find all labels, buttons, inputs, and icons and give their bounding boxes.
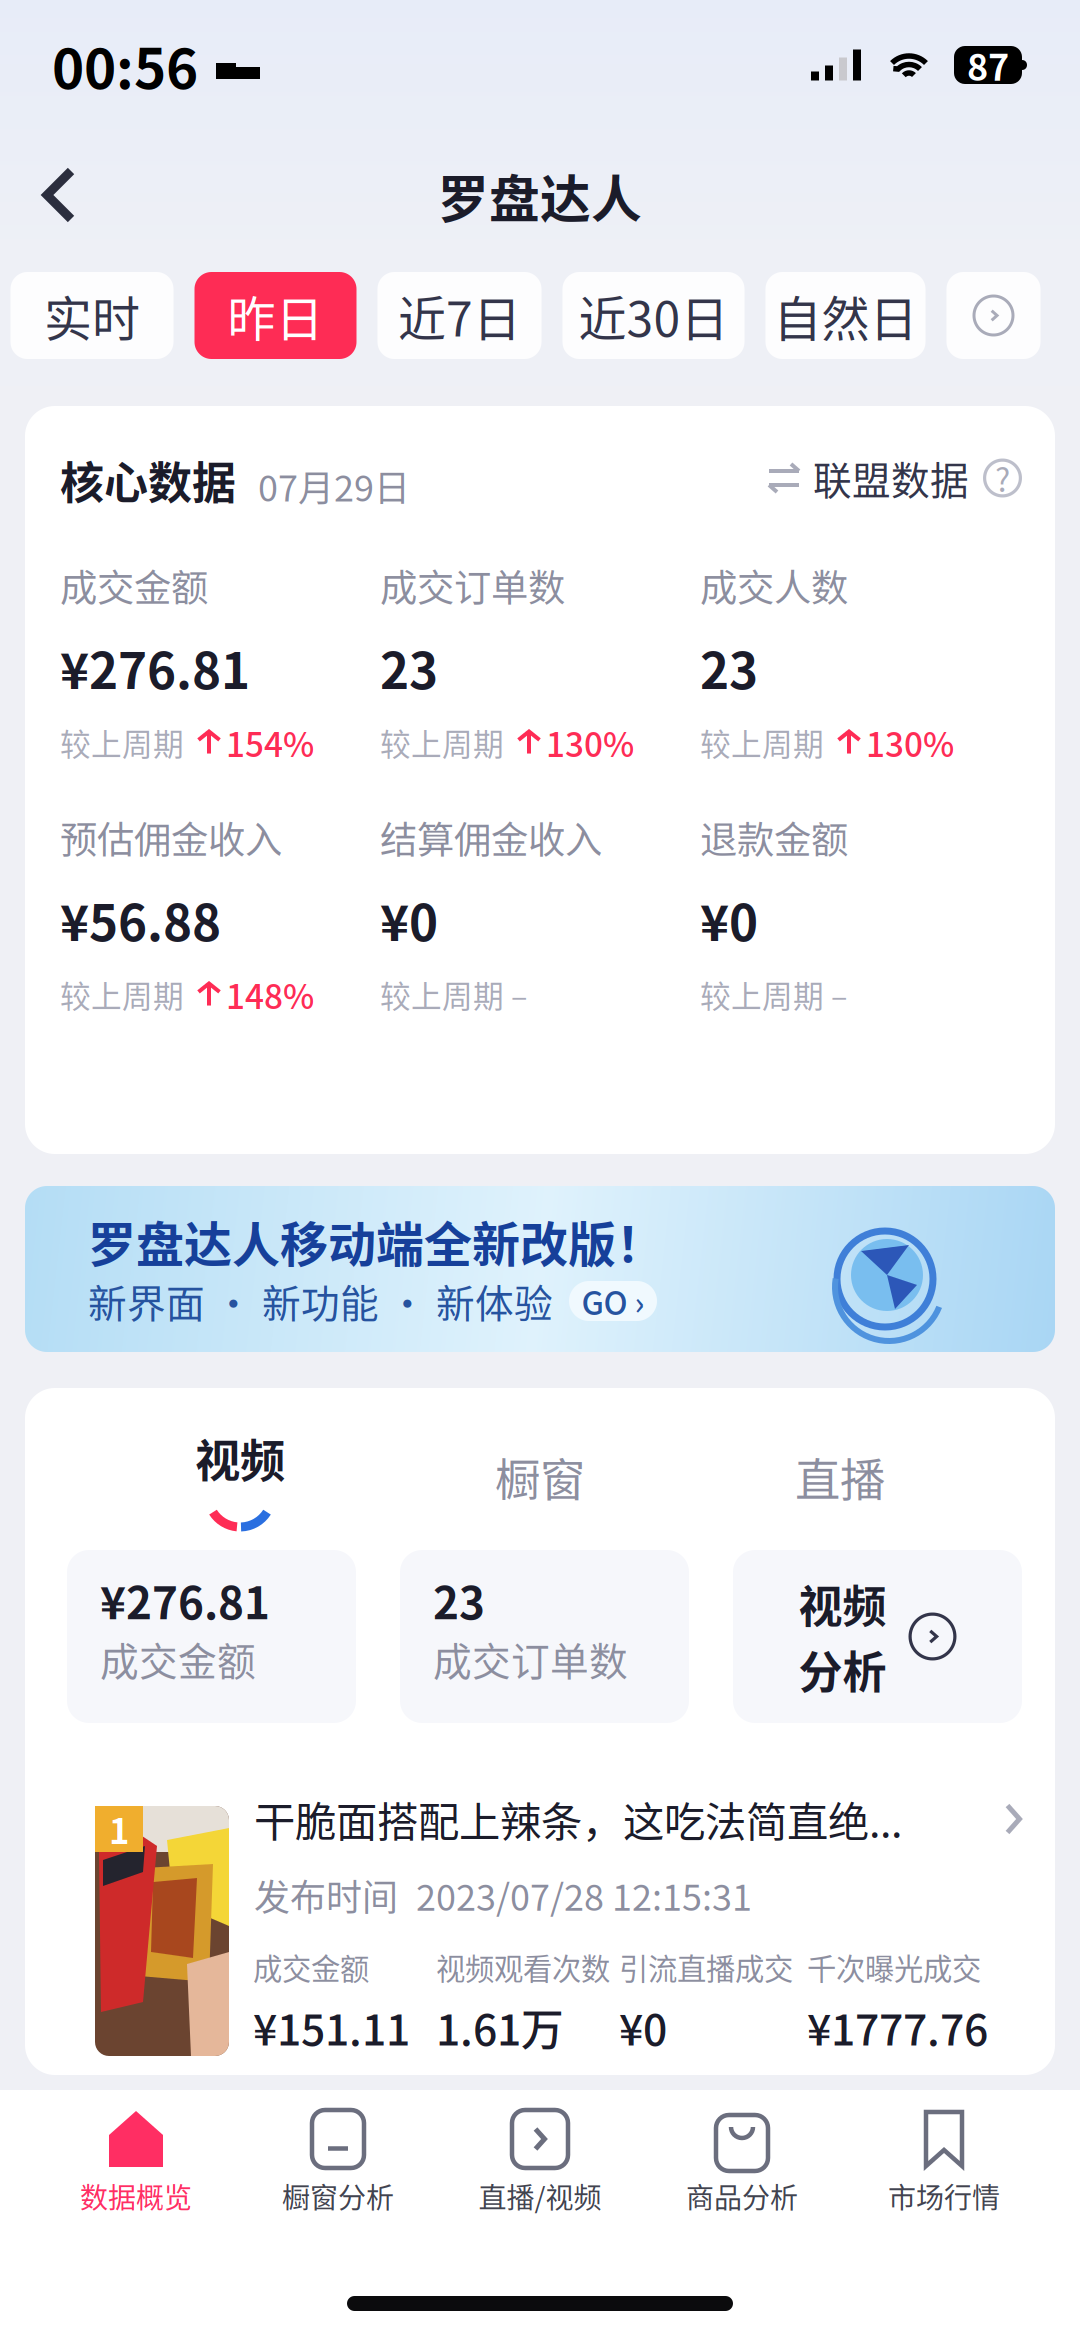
button[interactable]: 直播: [690, 1412, 990, 1542]
button[interactable]: 近30日: [562, 272, 744, 359]
staticText: 橱窗分析: [282, 2176, 394, 2216]
staticText: 23: [433, 1568, 485, 1632]
staticText: 分析: [798, 1637, 886, 1701]
staticText: 较上周期: [60, 720, 184, 765]
staticText: 成交订单数: [433, 1631, 628, 1687]
staticText: 直播/视频: [478, 2176, 601, 2216]
staticText: 1.61万: [436, 1996, 564, 2058]
staticText: 实时: [44, 281, 140, 350]
button[interactable]: 数据概览: [35, 2106, 237, 2216]
button[interactable]: 商品分析: [641, 2106, 843, 2216]
staticText: 近7日: [398, 281, 521, 350]
staticText: 新界面 · 新功能 · 新体验: [88, 1273, 553, 1329]
staticText: 成交金额: [253, 1946, 369, 1988]
staticText: 罗盘达人: [438, 159, 642, 233]
button[interactable]: 罗盘达人移动端全新改版！: [25, 1186, 1055, 1352]
staticText: 87: [967, 39, 1009, 91]
staticText: ?: [995, 455, 1010, 501]
staticText: 橱窗: [495, 1444, 585, 1510]
staticText: 较上周期: [380, 972, 504, 1017]
button[interactable]: 近7日: [377, 272, 541, 359]
staticText: 较上周期: [700, 972, 824, 1017]
staticText: 成交金额: [60, 558, 208, 613]
button[interactable]: 实时: [10, 272, 173, 359]
staticText: 联盟数据: [813, 450, 969, 506]
staticText: 23: [380, 632, 438, 703]
button[interactable]: 橱窗分析: [237, 2106, 439, 2216]
staticText: 近30日: [578, 281, 728, 350]
button[interactable]: 联盟数据: [740, 450, 1022, 506]
staticText: –: [824, 972, 847, 1017]
staticText: GO ›: [581, 1278, 644, 1324]
staticText: 视频: [798, 1572, 886, 1635]
staticText: ¥276.81: [100, 1568, 270, 1632]
staticText: ¥0: [380, 884, 438, 955]
button[interactable]: 视频: [733, 1550, 1022, 1723]
staticText: ¥0: [619, 1996, 667, 2058]
staticText: 2023/07/28 12:15:31: [416, 1869, 752, 1921]
staticText: 结算佣金收入: [380, 810, 602, 865]
button[interactable]: 市场行情: [843, 2106, 1045, 2216]
button[interactable]: 返回: [0, 150, 120, 242]
button[interactable]: 干脆面搭配上辣条，这吃法简直绝...: [254, 1790, 1022, 1848]
staticText: 罗盘达人移动端全新改版！: [88, 1206, 664, 1276]
staticText: 148%: [226, 970, 314, 1019]
staticText: 23: [700, 632, 758, 703]
staticText: 昨日: [227, 281, 323, 350]
button[interactable]: 更多筛选: [946, 272, 1040, 359]
staticText: 市场行情: [888, 2176, 1000, 2216]
staticText: 干脆面搭配上辣条，这吃法简直绝...: [254, 1789, 902, 1849]
staticText: 发布时间: [254, 1869, 398, 1921]
staticText: 直播: [795, 1444, 885, 1510]
staticText: ¥0: [700, 884, 758, 955]
staticText: 退款金额: [700, 810, 848, 865]
staticText: 视频: [195, 1425, 285, 1491]
staticText: 自然日: [773, 281, 917, 350]
staticText: 较上周期: [60, 972, 184, 1017]
staticText: 引流直播成交: [619, 1946, 793, 1988]
staticText: ¥1777.76: [807, 1996, 988, 2058]
button[interactable]: 自然日: [765, 272, 925, 359]
staticText: 成交金额: [100, 1631, 256, 1687]
staticText: ¥276.81: [60, 632, 250, 703]
staticText: 130%: [546, 718, 634, 767]
button[interactable]: 视频: [90, 1412, 390, 1542]
staticText: 千次曝光成交: [807, 1946, 981, 1988]
staticText: 商品分析: [686, 2176, 798, 2216]
staticText: 数据概览: [80, 2176, 192, 2216]
staticText: –: [504, 972, 527, 1017]
button[interactable]: 昨日: [194, 272, 356, 359]
staticText: ¥151.11: [253, 1996, 410, 2058]
staticText: 154%: [226, 718, 314, 767]
staticText: 成交订单数: [380, 558, 565, 613]
staticText: 00:56: [52, 25, 198, 105]
staticText: 1: [109, 1804, 129, 1854]
staticText: ¥56.88: [60, 884, 221, 955]
button[interactable]: 橱窗: [390, 1412, 690, 1542]
staticText: 预估佣金收入: [60, 810, 282, 865]
staticText: 视频观看次数: [436, 1946, 610, 1988]
staticText: 07月29日: [258, 460, 410, 512]
staticText: 较上周期: [380, 720, 504, 765]
staticText: 较上周期: [700, 720, 824, 765]
staticText: 核心数据: [60, 448, 236, 512]
staticText: 130%: [866, 718, 954, 767]
staticText: 成交人数: [700, 558, 848, 613]
button[interactable]: 直播/视频: [439, 2106, 641, 2216]
